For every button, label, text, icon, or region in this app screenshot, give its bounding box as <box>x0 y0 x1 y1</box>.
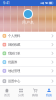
button[interactable]: 地址管理 <box>0 67 56 75</box>
staticText: 首页 <box>4 93 10 97</box>
staticText: 地址管理 <box>8 69 20 73</box>
staticText: 个人资料 <box>8 34 20 38</box>
button[interactable]: 购物 <box>28 85 42 100</box>
staticText: 设置中心 <box>8 79 20 83</box>
staticText: 分类 <box>18 93 24 97</box>
button[interactable]: 分类 <box>14 85 28 100</box>
staticText: 我的收藏 <box>8 42 20 47</box>
staticText: 购物 <box>32 93 38 97</box>
button[interactable]: 个人资料 <box>0 32 56 40</box>
staticText: 9:41 <box>3 1 9 5</box>
staticText: 优惠券 <box>8 60 17 64</box>
staticText: 我的订单 <box>8 51 20 55</box>
button[interactable]: 设置中心 <box>0 77 56 85</box>
button[interactable]: 优惠券 <box>0 58 56 66</box>
staticText: 我的 <box>46 93 52 97</box>
button[interactable]: 我的收藏 <box>0 40 56 49</box>
button[interactable]: 我的 <box>42 85 56 100</box>
staticText: 用户名 <box>22 20 34 25</box>
button[interactable]: 我的订单 <box>0 49 56 57</box>
button[interactable]: 首页 <box>0 85 14 100</box>
